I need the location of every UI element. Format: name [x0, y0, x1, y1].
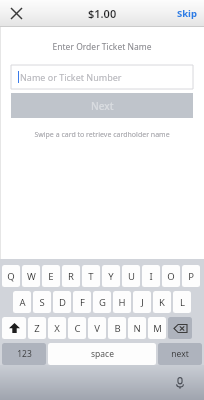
button[interactable]: Backspace [168, 317, 192, 339]
button[interactable]: D [53, 291, 71, 313]
button[interactable]: G [93, 291, 111, 313]
staticText: E [48, 270, 54, 283]
staticText: space [91, 348, 114, 360]
staticText: R [68, 270, 74, 283]
button[interactable]: F [73, 291, 91, 313]
button[interactable]: P [182, 265, 200, 287]
button[interactable]: Dictation [170, 373, 190, 393]
staticText: Next [91, 99, 114, 113]
staticText: G [99, 296, 106, 309]
staticText: Swipe a card to retrieve cardholder name [0, 130, 204, 140]
button[interactable]: O [162, 265, 180, 287]
staticText: Z [34, 322, 40, 335]
staticText: O [167, 270, 175, 283]
button[interactable]: Shift [2, 317, 26, 339]
button[interactable]: N [128, 317, 146, 339]
staticText: Name or Ticket Number [20, 71, 122, 83]
button[interactable]: S [33, 291, 51, 313]
staticText: W [27, 270, 36, 283]
staticText: Skip [177, 7, 197, 20]
staticText: D [59, 296, 66, 309]
staticText: Enter Order Ticket Name [0, 41, 204, 53]
button[interactable]: X [48, 317, 66, 339]
staticText: C [74, 322, 81, 335]
staticText: Y [108, 270, 114, 283]
staticText: M [153, 322, 162, 335]
staticText: L [180, 296, 185, 309]
button[interactable]: J [133, 291, 151, 313]
staticText: J [141, 296, 144, 309]
staticText: U [128, 270, 135, 283]
button[interactable]: L [173, 291, 191, 313]
button[interactable]: Q [2, 265, 20, 287]
button[interactable]: Skip [177, 7, 197, 20]
button[interactable]: U [122, 265, 140, 287]
button[interactable]: W [22, 265, 40, 287]
button[interactable]: K [153, 291, 171, 313]
staticText: X [54, 322, 60, 335]
button[interactable]: T [82, 265, 100, 287]
staticText: H [118, 296, 126, 309]
button[interactable]: C [68, 317, 86, 339]
button[interactable]: Z [28, 317, 46, 339]
button[interactable]: H [113, 291, 131, 313]
staticText: V [94, 322, 100, 335]
button[interactable]: A [13, 291, 31, 313]
staticText: K [159, 296, 165, 309]
button[interactable]: Name or Ticket Number [11, 65, 193, 89]
button[interactable]: B [108, 317, 126, 339]
button[interactable]: Close [6, 3, 26, 23]
staticText: I [149, 270, 153, 283]
button[interactable]: E [42, 265, 60, 287]
staticText: T [88, 270, 94, 283]
button[interactable]: 123 [2, 343, 46, 365]
button[interactable]: V [88, 317, 106, 339]
staticText: 123 [17, 348, 32, 360]
button[interactable]: I [142, 265, 160, 287]
button[interactable]: Y [102, 265, 120, 287]
button[interactable]: R [62, 265, 80, 287]
staticText: F [80, 296, 85, 309]
staticText: N [133, 322, 141, 335]
button[interactable]: space [48, 343, 156, 365]
staticText: A [19, 296, 26, 309]
staticText: Q [7, 270, 15, 283]
button[interactable]: next [158, 343, 202, 365]
staticText: $1.00 [88, 6, 117, 21]
staticText: B [114, 322, 121, 335]
staticText: S [39, 296, 45, 309]
staticText: next [171, 348, 189, 360]
staticText: P [188, 270, 194, 283]
button[interactable]: M [148, 317, 166, 339]
